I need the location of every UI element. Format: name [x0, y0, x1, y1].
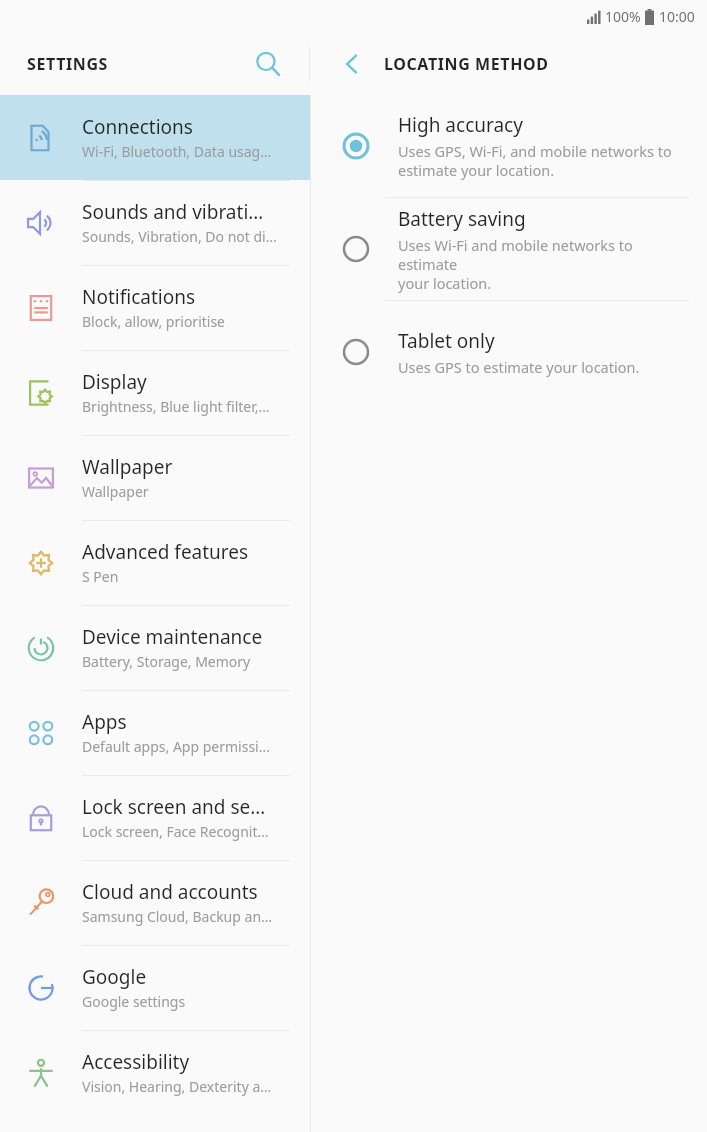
- staticText: Block, allow, prioritise: [82, 312, 226, 331]
- button[interactable]: Advanced features: [0, 520, 310, 605]
- staticText: 100%: [605, 7, 641, 26]
- staticText: Accessibility: [82, 1049, 190, 1075]
- staticText: Tablet only: [398, 328, 495, 354]
- button[interactable]: Connections: [0, 95, 310, 180]
- staticText: Cloud and accounts: [82, 879, 258, 905]
- button[interactable]: Wallpaper: [0, 435, 310, 520]
- button[interactable]: Accessibility: [0, 1030, 310, 1115]
- button[interactable]: Sounds and vibrati…: [0, 180, 310, 265]
- staticText: Apps: [82, 709, 127, 735]
- staticText: LOCATING METHOD: [384, 53, 549, 75]
- button[interactable]: Back: [328, 40, 376, 88]
- staticText: Battery saving: [398, 206, 526, 232]
- staticText: Display: [82, 369, 147, 395]
- staticText: Samsung Cloud, Backup an…: [82, 907, 273, 926]
- staticText: Advanced features: [82, 539, 249, 565]
- button[interactable]: Device maintenance: [0, 605, 310, 690]
- staticText: Connections: [82, 114, 193, 140]
- staticText: Sounds, Vibration, Do not di…: [82, 227, 277, 246]
- staticText: Sounds and vibrati…: [82, 199, 264, 225]
- staticText: Google: [82, 964, 147, 990]
- staticText: Uses Wi-Fi and mobile networks to estima…: [398, 235, 689, 293]
- staticText: Battery, Storage, Memory: [82, 652, 251, 671]
- staticText: Lock screen, Face Recognit…: [82, 822, 269, 841]
- button[interactable]: Lock screen and se…: [0, 775, 310, 860]
- staticText: Google settings: [82, 992, 186, 1011]
- button[interactable]: Battery saving: [311, 198, 707, 300]
- button[interactable]: Apps: [0, 690, 310, 775]
- staticText: Default apps, App permissi…: [82, 737, 270, 756]
- button[interactable]: Notifications: [0, 265, 310, 350]
- staticText: Vision, Hearing, Dexterity a…: [82, 1077, 272, 1096]
- staticText: 10:00: [659, 7, 695, 26]
- staticText: Brightness, Blue light filter,…: [82, 397, 270, 416]
- staticText: Notifications: [82, 284, 196, 310]
- button[interactable]: Cloud and accounts: [0, 860, 310, 945]
- button[interactable]: Google: [0, 945, 310, 1030]
- staticText: Device maintenance: [82, 624, 263, 650]
- staticText: Wi-Fi, Bluetooth, Data usag…: [82, 142, 272, 161]
- staticText: Wallpaper: [82, 454, 173, 480]
- staticText: High accuracy: [398, 112, 523, 138]
- staticText: Uses GPS to estimate your location.: [398, 357, 640, 377]
- button[interactable]: Tablet only: [311, 301, 707, 403]
- button[interactable]: Display: [0, 350, 310, 435]
- staticText: Uses GPS, Wi-Fi, and mobile networks to …: [398, 141, 672, 180]
- staticText: SETTINGS: [27, 53, 108, 75]
- button[interactable]: Search: [246, 42, 290, 86]
- staticText: Wallpaper: [82, 482, 149, 501]
- staticText: S Pen: [82, 567, 119, 586]
- button[interactable]: High accuracy: [311, 95, 707, 197]
- staticText: Lock screen and se…: [82, 794, 266, 820]
